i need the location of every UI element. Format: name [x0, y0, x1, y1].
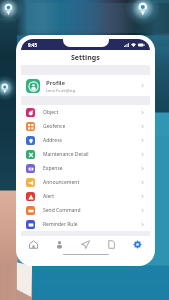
- staticText: 9:45: [28, 42, 37, 48]
- staticText: Send Command: [43, 207, 140, 214]
- button[interactable]: Object: [21, 105, 150, 119]
- button[interactable]: Reports: [98, 236, 124, 253]
- staticText: Alert: [43, 193, 140, 200]
- button[interactable]: Settings: [124, 236, 150, 253]
- staticText: Announcement: [43, 179, 140, 186]
- staticText: Address: [43, 137, 140, 144]
- button[interactable]: Geofence: [21, 119, 150, 133]
- button[interactable]: Home: [21, 236, 46, 253]
- button[interactable]: Reminder Rule: [21, 217, 150, 231]
- button[interactable]: Address: [21, 133, 150, 147]
- staticText: Object: [43, 109, 140, 116]
- staticText: Reminder Rule: [43, 221, 140, 228]
- staticText: Lens.Truck@stg: [46, 88, 76, 93]
- button[interactable]: Track: [72, 236, 98, 253]
- button[interactable]: Alert: [21, 189, 150, 203]
- button[interactable]: Send Command: [21, 203, 150, 217]
- staticText: Maintenance Detail: [43, 151, 140, 158]
- staticText: Profile: [46, 79, 66, 87]
- button[interactable]: Announcement: [21, 175, 150, 189]
- staticText: Geofence: [43, 123, 140, 130]
- button[interactable]: Expense: [21, 161, 150, 175]
- staticText: Expense: [43, 165, 140, 172]
- staticText: Settings: [71, 53, 100, 63]
- button[interactable]: Profile: [21, 75, 150, 96]
- button[interactable]: Maintenance Detail: [21, 147, 150, 161]
- button[interactable]: Objects: [46, 236, 72, 253]
